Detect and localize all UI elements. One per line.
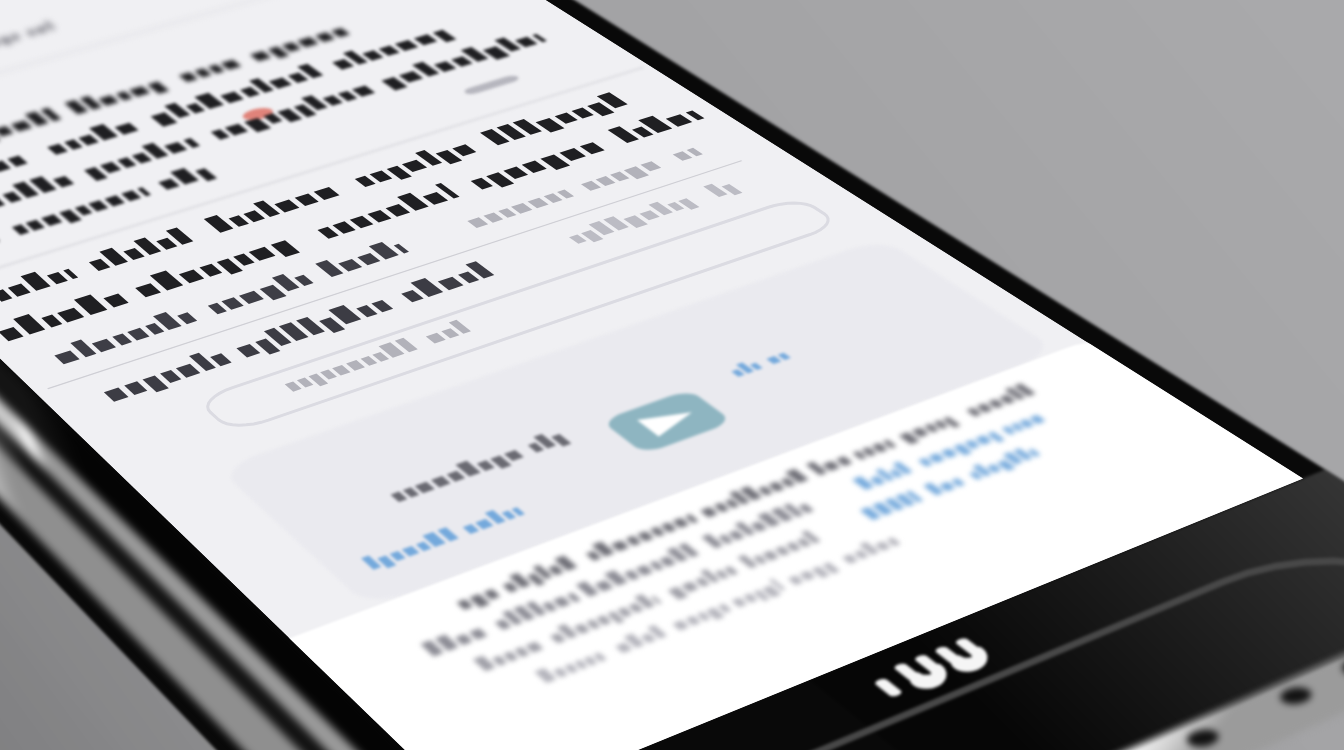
button[interactable] [0, 0, 1344, 750]
other: Phone on a desk showing a list screen [0, 0, 1344, 750]
